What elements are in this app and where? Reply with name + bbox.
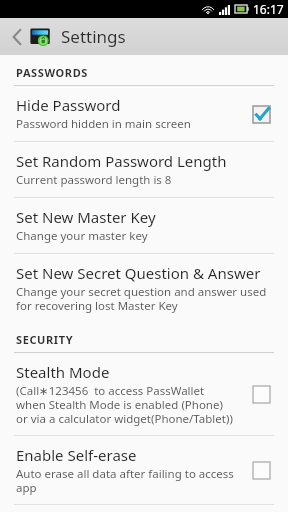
staticText: Password hidden in main screen [16,116,191,132]
staticText: (Call∗123456 to access PassWallet when S… [16,383,234,426]
staticText: Set New Secret Question & Answer [16,263,261,283]
staticText: SECURITY [16,332,74,347]
staticText: Change your master key [16,228,148,244]
staticText: PASSWORDS [16,65,88,80]
staticText: Settings [61,25,126,48]
staticText: Enable Self-erase [16,445,137,465]
button[interactable]: Hide Password [244,97,278,131]
staticText: Current password length is 8 [16,172,172,188]
staticText: Auto erase all data after failing to acc… [16,466,234,495]
staticText: Stealth Mode [16,362,110,382]
button[interactable]: Enable Self-erase [0,436,288,504]
button[interactable]: Set New Secret Question & Answer [0,254,288,322]
button[interactable]: Stealth Mode [0,353,288,435]
button[interactable]: Enable Self-erase [244,453,278,487]
button[interactable]: Hide Password [0,86,288,141]
staticText: 16:17 [253,1,284,17]
button[interactable]: Set New Master Key [0,198,288,253]
button[interactable]: Stealth Mode [244,377,278,411]
staticText: Hide Password [16,95,121,115]
staticText: Set Random Password Length [16,151,227,171]
button[interactable]: Set Random Password Length [0,142,288,197]
staticText: Change your secret question and answer u… [16,284,278,313]
button[interactable]: Navigate up [6,18,28,55]
staticText: Set New Master Key [16,207,156,227]
